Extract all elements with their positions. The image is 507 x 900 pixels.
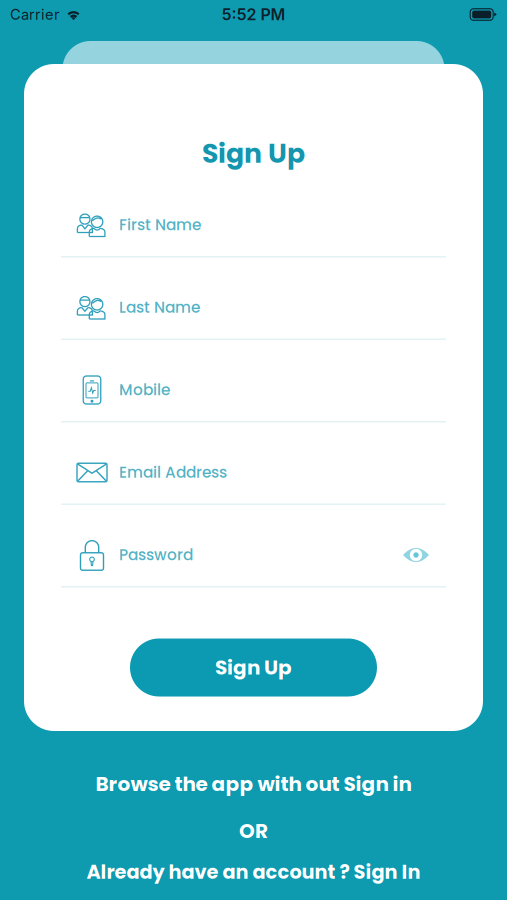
staticText: OR (239, 817, 268, 845)
button[interactable]: Browse the app with out Sign in (43, 771, 463, 797)
staticText: Password (119, 544, 193, 566)
staticText: First Name (119, 214, 201, 236)
staticText: Sign Up (215, 653, 292, 681)
staticText: Email Address (119, 462, 227, 483)
staticText: Carrier (10, 6, 60, 23)
staticText: 5:52 PM (221, 5, 285, 24)
button[interactable]: Show password (402, 545, 430, 565)
staticText: Already have an account ? Sign In (86, 858, 420, 886)
staticText: Mobile (119, 379, 170, 401)
staticText: Browse the app with out Sign in (95, 770, 411, 798)
button[interactable]: Already have an account ? Sign In (43, 859, 463, 885)
button[interactable]: Sign Up (130, 638, 377, 696)
staticText: Sign Up (202, 135, 305, 172)
staticText: Last Name (119, 297, 200, 318)
